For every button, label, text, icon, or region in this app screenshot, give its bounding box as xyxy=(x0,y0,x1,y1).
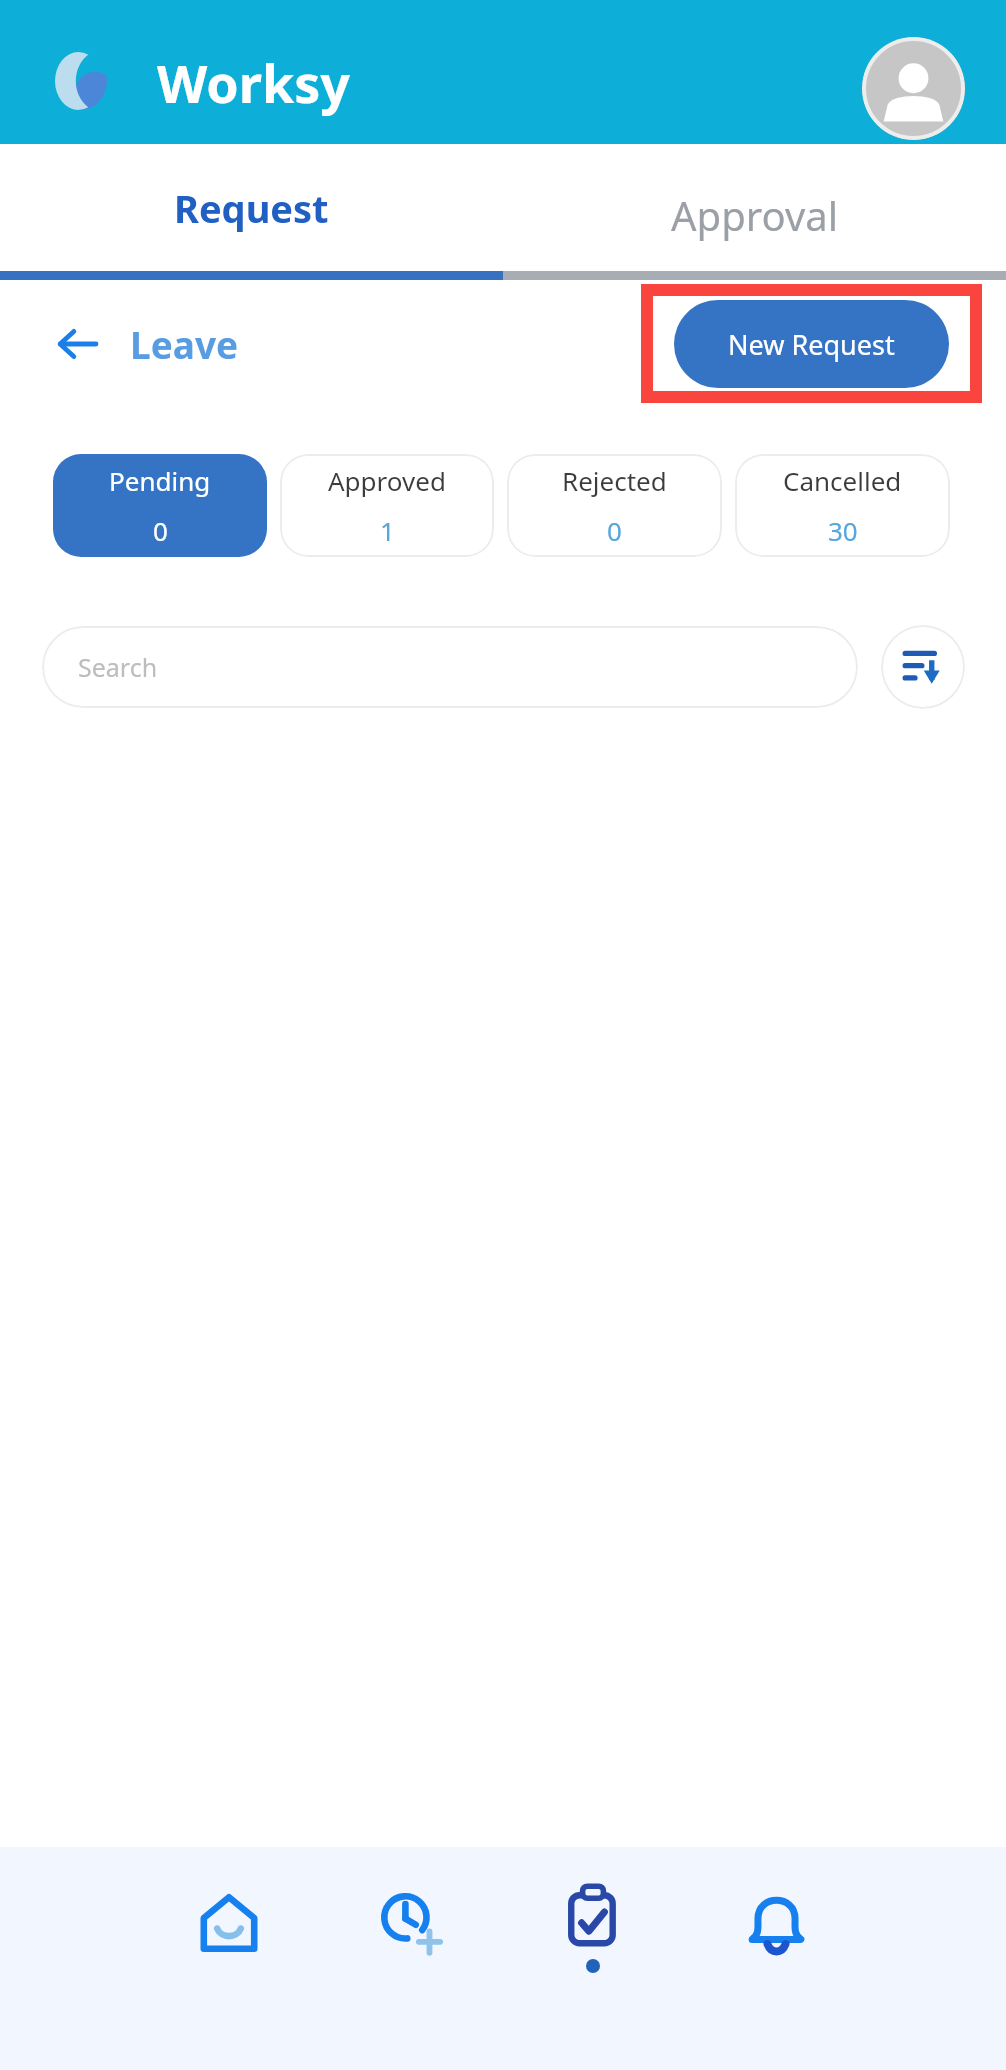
button[interactable]: Approval xyxy=(503,144,1006,271)
staticText: New Request xyxy=(728,326,895,363)
staticText: Approved xyxy=(328,463,446,498)
staticText: Rejected xyxy=(562,463,667,498)
button[interactable]: Request xyxy=(0,144,503,271)
button[interactable]: Attendance xyxy=(346,1867,476,1987)
button[interactable]: Search xyxy=(42,626,858,708)
staticText: Worksy xyxy=(157,47,351,118)
button[interactable]: Cancelled xyxy=(735,454,950,557)
button[interactable]: Profile xyxy=(862,37,965,140)
staticText: 30 xyxy=(828,513,858,548)
staticText: 0 xyxy=(153,513,168,548)
button[interactable]: Requests xyxy=(528,1867,658,1987)
staticText: Pending xyxy=(109,463,211,498)
button[interactable]: Home xyxy=(164,1867,294,1987)
staticText: Approval xyxy=(671,188,838,242)
button[interactable]: Rejected xyxy=(507,454,722,557)
button[interactable]: Notifications xyxy=(711,1867,841,1987)
button[interactable]: Pending xyxy=(53,454,267,557)
staticText: 1 xyxy=(380,513,395,548)
staticText: 0 xyxy=(607,513,622,548)
button[interactable]: Sort xyxy=(881,625,965,709)
staticText: Leave xyxy=(130,319,239,369)
staticText: Search xyxy=(78,650,158,684)
button[interactable]: Back xyxy=(50,317,104,371)
button[interactable]: New Request xyxy=(674,300,949,388)
button[interactable]: Approved xyxy=(280,454,494,557)
staticText: Cancelled xyxy=(783,463,902,498)
staticText: Request xyxy=(174,182,329,234)
